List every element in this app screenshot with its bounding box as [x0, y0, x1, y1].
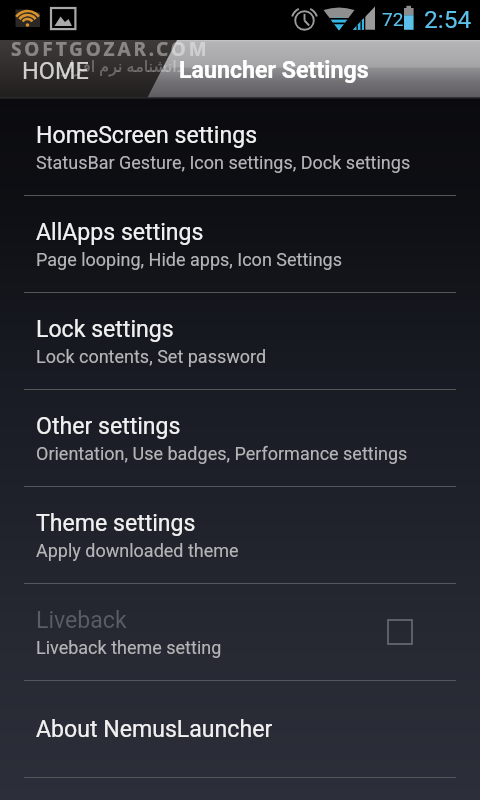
- button[interactable]: AllApps settings: [0, 196, 480, 292]
- staticText: HOME: [22, 57, 89, 85]
- staticText: Other settings: [36, 413, 181, 440]
- staticText: About NemusLauncher: [36, 716, 273, 743]
- staticText: Apply downloaded theme: [36, 540, 239, 561]
- staticText: Orientation, Use badges, Performance set…: [36, 443, 408, 464]
- staticText: Launcher Settings: [179, 56, 369, 83]
- staticText: HomeScreen settings: [36, 122, 258, 149]
- staticText: دانشنامه نرم افزار: [62, 55, 184, 77]
- staticText: SOFTGOZAR.COM: [11, 36, 210, 62]
- button[interactable]: Lock settings: [0, 293, 480, 389]
- button[interactable]: Liveback: [0, 584, 480, 680]
- staticText: AllApps settings: [36, 219, 204, 246]
- button[interactable]: About NemusLauncher: [0, 681, 480, 777]
- staticText: Page looping, Hide apps, Icon Settings: [36, 249, 343, 270]
- staticText: StatusBar Gesture, Icon settings, Dock s…: [36, 152, 411, 173]
- staticText: 72: [382, 8, 404, 30]
- staticText: Lock contents, Set password: [36, 346, 267, 367]
- staticText: 2:54: [424, 5, 472, 34]
- button[interactable]: HOME: [0, 40, 480, 99]
- button[interactable]: Theme settings: [0, 487, 480, 583]
- staticText: Theme settings: [36, 510, 196, 537]
- staticText: Liveback theme setting: [36, 637, 222, 658]
- button[interactable]: HomeScreen settings: [0, 99, 480, 195]
- button[interactable]: Other settings: [0, 390, 480, 486]
- staticText: Lock settings: [36, 316, 174, 343]
- staticText: Liveback: [36, 607, 127, 634]
